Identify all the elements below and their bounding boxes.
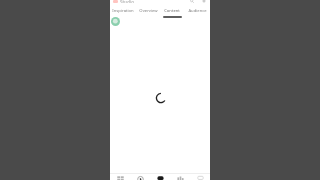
button[interactable]: Inspiration [110, 4, 136, 18]
button[interactable]: Comments [190, 174, 210, 180]
button[interactable]: Channel avatar [111, 17, 120, 26]
button[interactable]: Content [130, 174, 150, 180]
button[interactable]: Analytics [170, 174, 190, 180]
button[interactable]: Overview [136, 4, 160, 18]
staticText: Audience [188, 8, 207, 14]
staticText: Inspiration [112, 8, 134, 14]
button[interactable]: Dashboard [110, 174, 130, 180]
staticText: Studio [120, 0, 135, 3]
button[interactable]: Audience [184, 4, 210, 18]
button[interactable]: Account [202, 0, 206, 3]
button[interactable]: Create [150, 174, 170, 180]
button[interactable]: Content [160, 4, 184, 18]
staticText: Overview [139, 8, 158, 14]
button[interactable]: Search [190, 0, 194, 3]
staticText: Content [164, 8, 180, 14]
